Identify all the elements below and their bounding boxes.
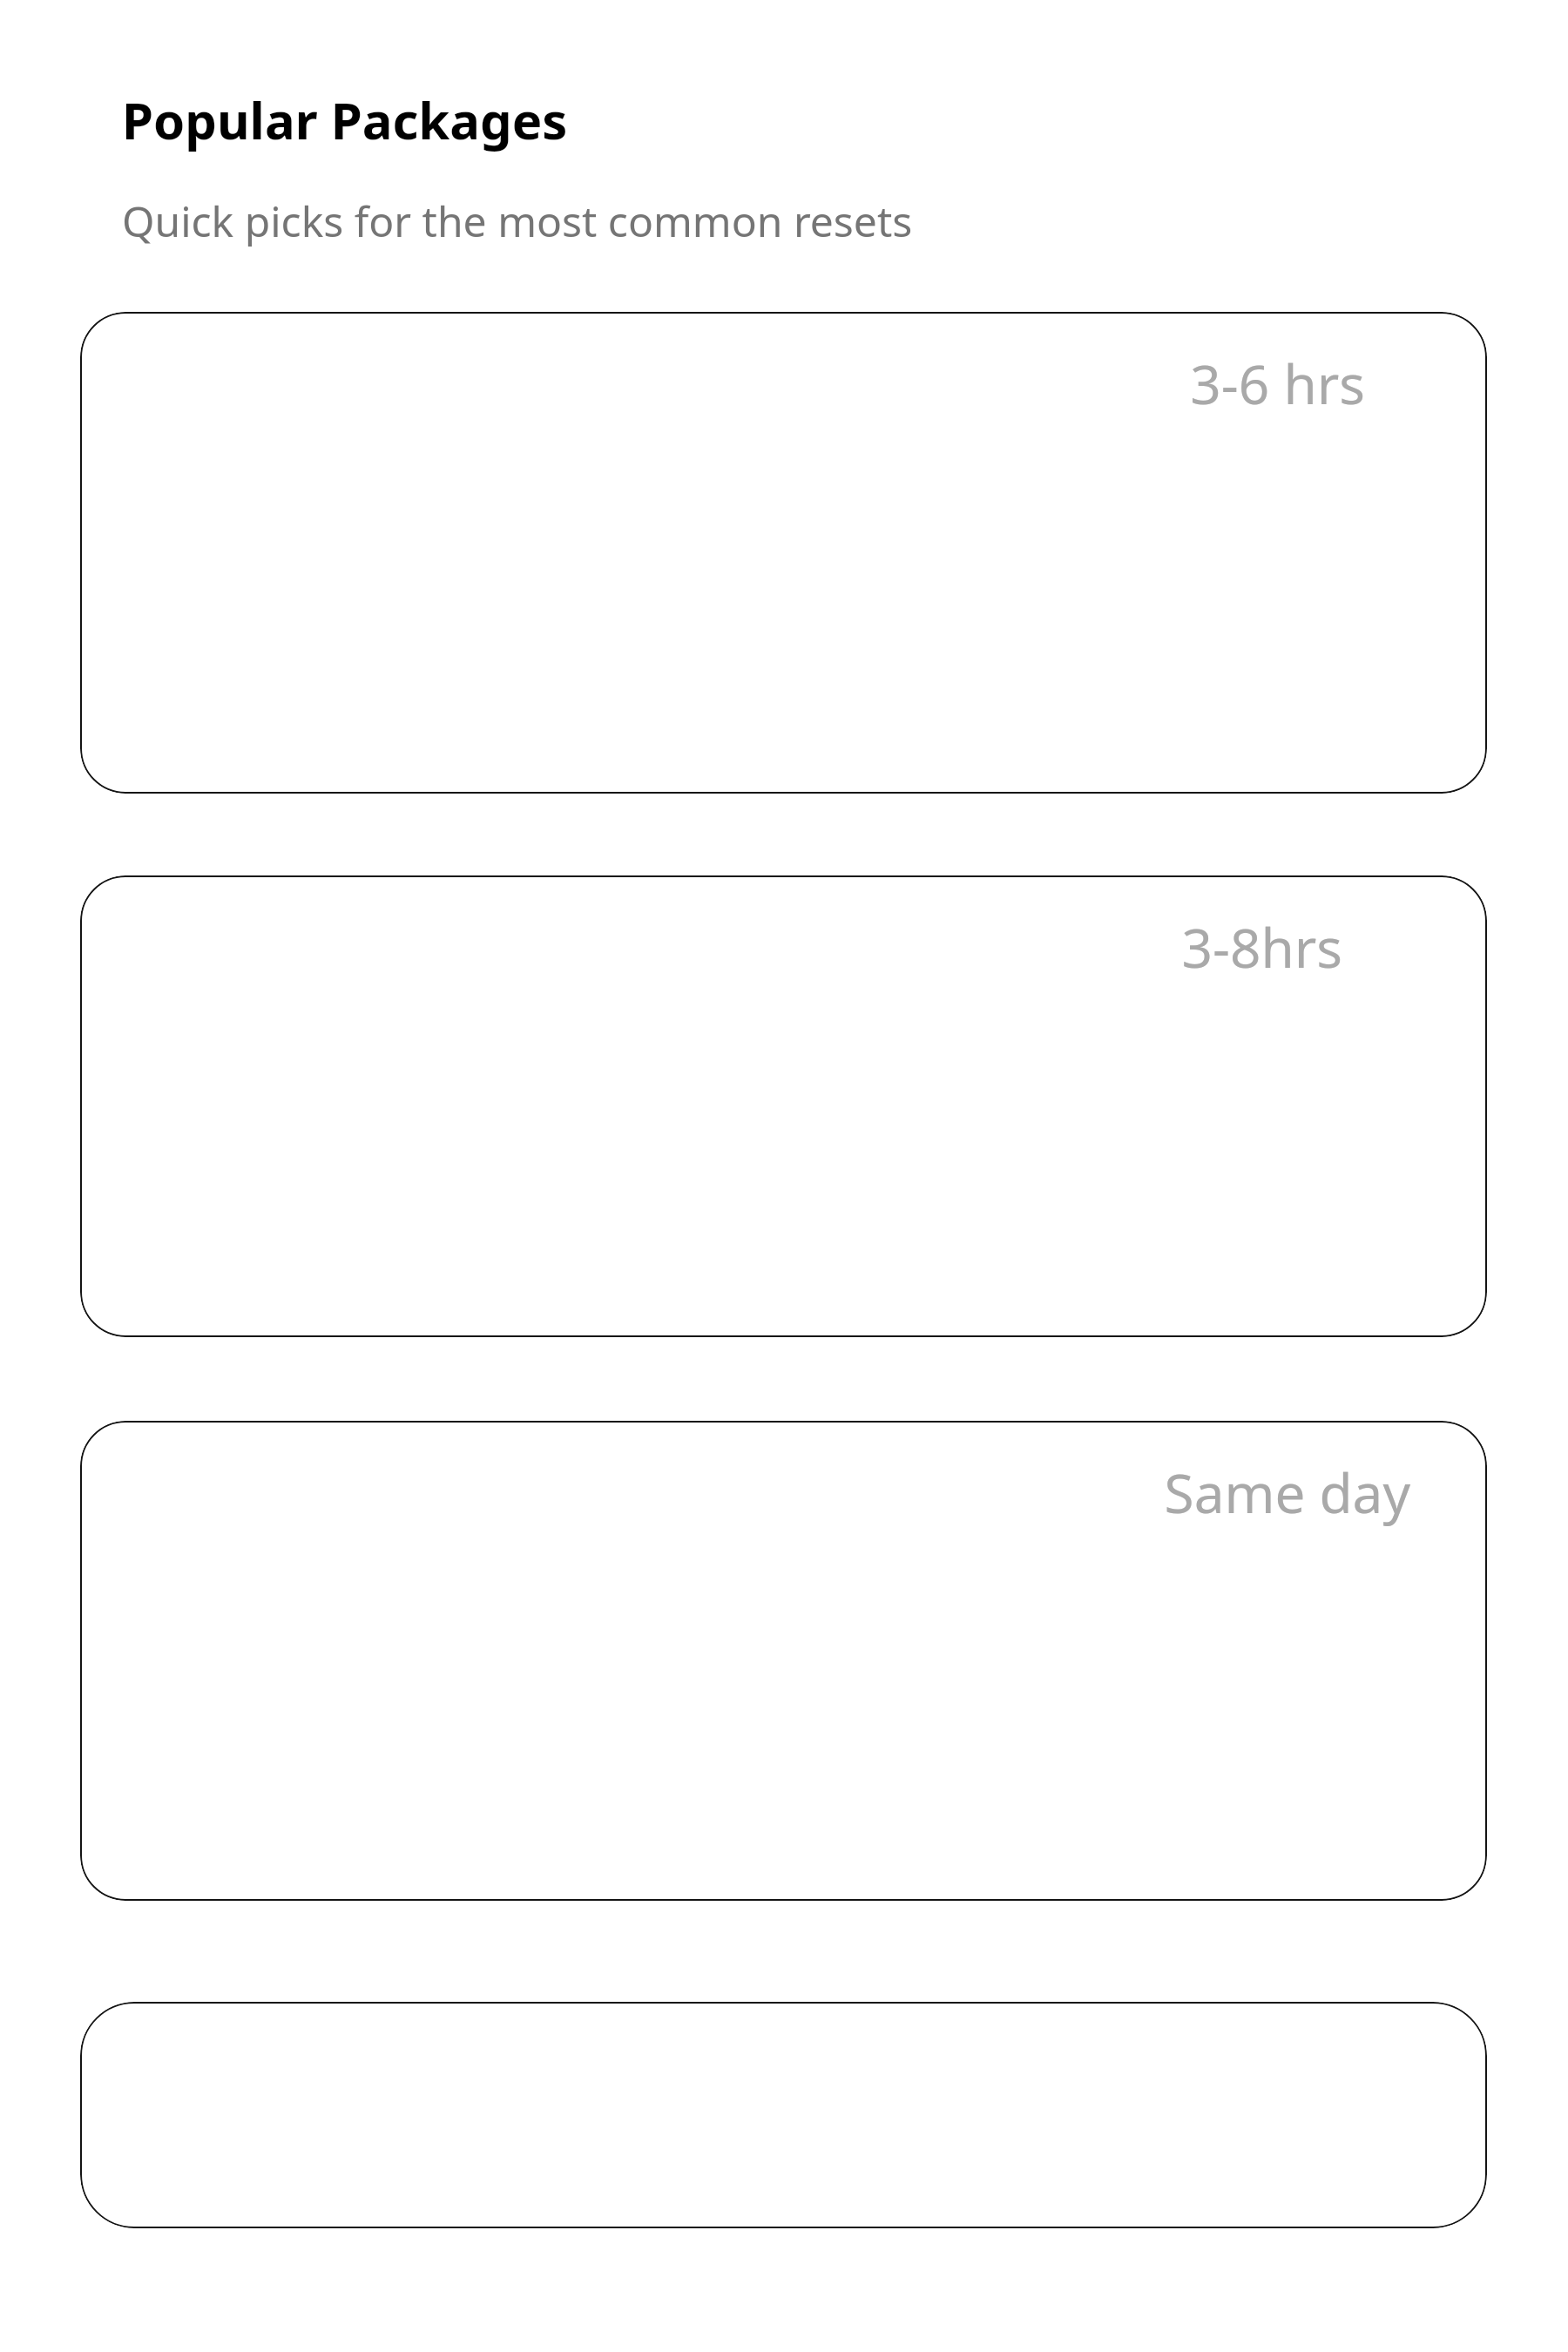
staticText: Popular Packages [122, 85, 568, 154]
button[interactable]: Package option, 3-6 hrs [80, 312, 1487, 794]
button[interactable]: Package option, 3-8hrs [80, 875, 1487, 1337]
staticText: 3-8hrs [80, 910, 1342, 983]
staticText: Same day [80, 1456, 1410, 1529]
button[interactable]: Package option [80, 2002, 1487, 2228]
staticText: Quick picks for the most common resets [122, 193, 913, 249]
staticText: 3-6 hrs [80, 347, 1365, 420]
button[interactable]: Package option, Same day [80, 1421, 1487, 1901]
